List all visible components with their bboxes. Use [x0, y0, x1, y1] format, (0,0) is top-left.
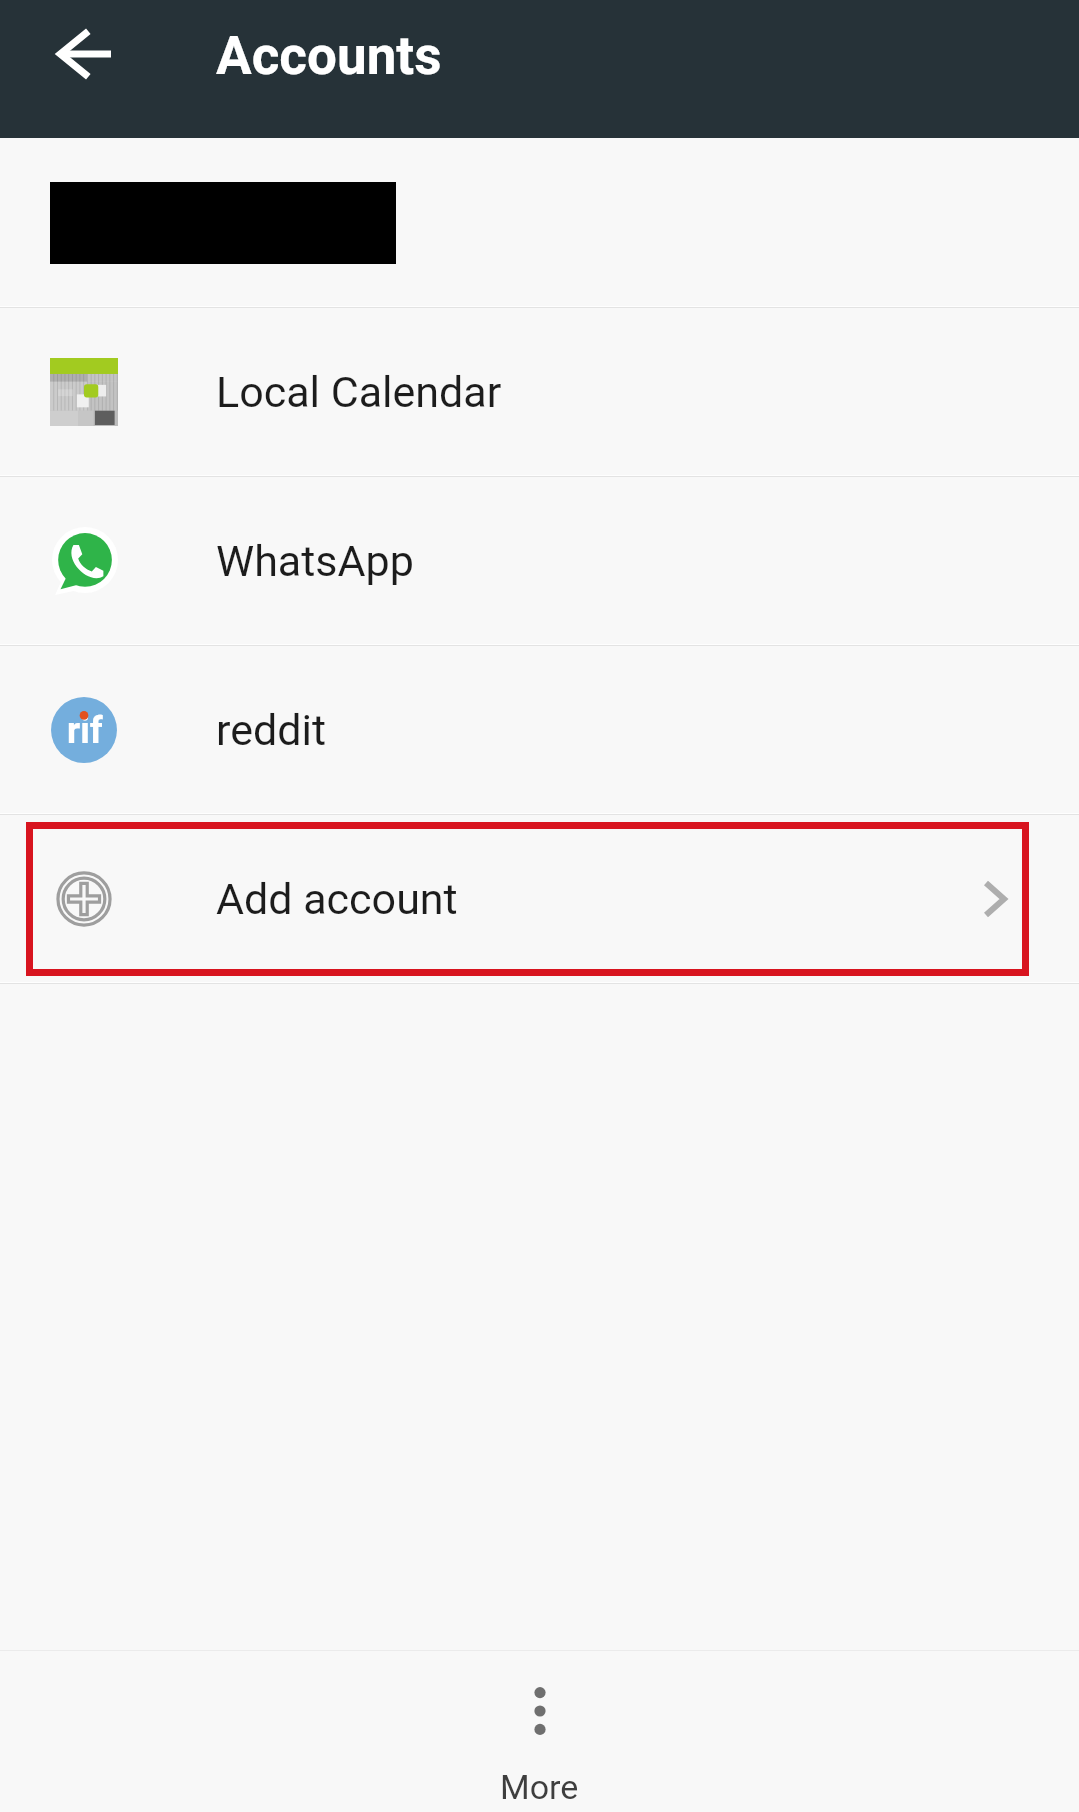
- button[interactable]: More: [0, 1651, 1079, 1812]
- button[interactable]: Local Calendar: [0, 308, 1079, 475]
- button[interactable]: WhatsApp: [0, 477, 1079, 644]
- button[interactable]: Add account: [0, 815, 1079, 982]
- staticText: reddit: [216, 705, 326, 755]
- button[interactable]: [0, 138, 1079, 306]
- staticText: WhatsApp: [216, 536, 414, 586]
- staticText: Accounts: [216, 25, 442, 87]
- button[interactable]: Navigate up: [30, 2, 138, 106]
- button[interactable]: rif: [0, 646, 1079, 813]
- staticText: rif: [67, 710, 103, 752]
- staticText: More: [500, 1767, 579, 1807]
- staticText: Add account: [216, 874, 458, 924]
- other: Open: [983, 880, 1007, 918]
- staticText: Local Calendar: [216, 367, 502, 417]
